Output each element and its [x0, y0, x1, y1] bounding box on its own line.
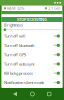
staticText: Notification silent mode [4, 80, 44, 85]
staticText: Turn off GPS [4, 52, 26, 57]
button[interactable]: Turn off auto-sync [2, 59, 62, 69]
staticText: Turn off wifi [4, 33, 25, 39]
staticText: 2.1 GB [48, 6, 60, 11]
button[interactable]: Notification silent mode [2, 78, 62, 87]
button[interactable]: STOP BOOSTING [2, 17, 62, 22]
staticText: Kill bckg process [4, 71, 33, 76]
staticText: Brightness [4, 22, 23, 28]
button[interactable]: Turn off GPS [2, 50, 62, 59]
button[interactable]: Recents [47, 92, 51, 96]
button[interactable]: Turn off wifi [2, 31, 62, 41]
button[interactable]: Back [13, 92, 17, 96]
button[interactable]: Turn off bluetooth [2, 41, 62, 50]
staticText: STOP BOOSTING [17, 17, 47, 22]
button[interactable]: Home [30, 92, 34, 96]
staticText: Turn off bluetooth [4, 43, 34, 48]
staticText: Turn off auto-sync [4, 61, 35, 67]
staticText: RAM 42% [7, 6, 24, 11]
button[interactable]: Kill bckg process [2, 69, 62, 78]
